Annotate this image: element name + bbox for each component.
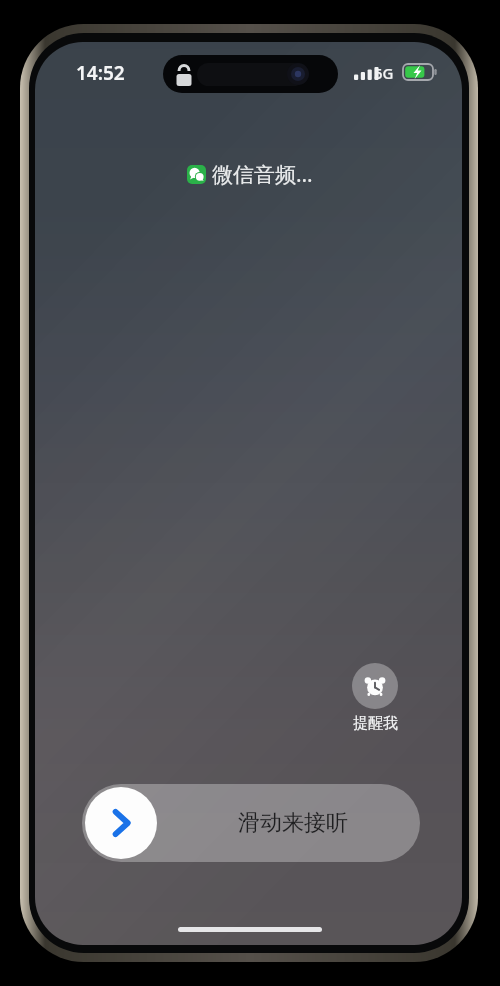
staticText: 5G bbox=[374, 63, 394, 83]
button[interactable]: 滑动来接听 bbox=[85, 787, 157, 859]
button[interactable]: 滑动来接听 bbox=[82, 784, 420, 862]
staticText: 滑动来接听 bbox=[238, 809, 348, 837]
staticText: 14:52 bbox=[76, 60, 125, 86]
button[interactable]: 提醒我 bbox=[338, 663, 412, 733]
staticText: 微信音频… bbox=[212, 160, 313, 189]
staticText: 提醒我 bbox=[353, 714, 398, 733]
